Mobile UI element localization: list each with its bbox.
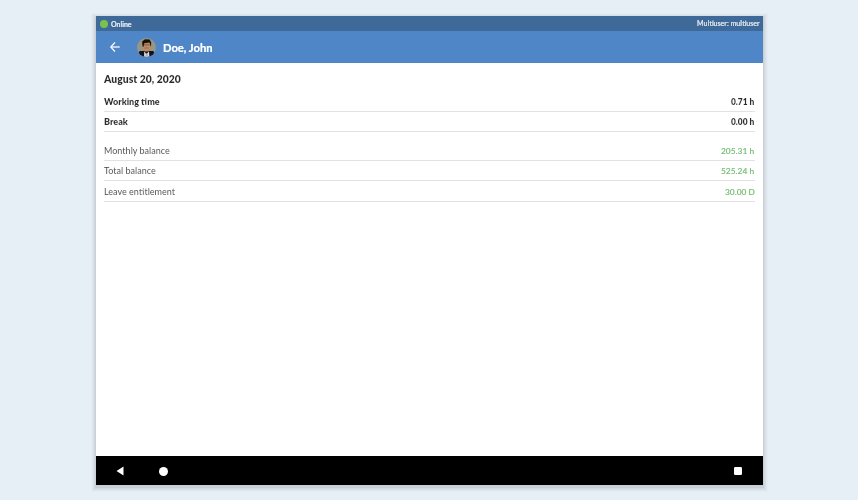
staticText: 525.24 h (721, 166, 755, 176)
staticText: 0.71 h (731, 97, 755, 107)
button[interactable]: Recents (728, 461, 748, 481)
button[interactable]: Back (102, 34, 128, 60)
staticText: Break (104, 116, 128, 127)
button[interactable]: Working time (96, 92, 763, 112)
button[interactable]: Total balance (96, 161, 763, 181)
staticText: Online (111, 20, 132, 28)
button[interactable]: Back (110, 461, 130, 481)
staticText: Working time (104, 96, 160, 107)
button[interactable]: Home (153, 461, 173, 481)
staticText: 30.00 D (725, 187, 755, 197)
staticText: Total balance (104, 165, 156, 176)
staticText: Doe, John (163, 41, 213, 54)
staticText: August 20, 2020 (104, 73, 181, 85)
staticText: 205.31 h (721, 146, 755, 156)
button[interactable]: Break (96, 112, 763, 132)
button[interactable]: Leave entitlement (96, 182, 763, 202)
button[interactable]: Monthly balance (96, 141, 763, 161)
staticText: 0.00 h (731, 117, 755, 127)
staticText: Leave entitlement (104, 186, 176, 197)
staticText: Monthly balance (104, 145, 170, 156)
staticText: Multiuser: multiuser (697, 19, 760, 28)
